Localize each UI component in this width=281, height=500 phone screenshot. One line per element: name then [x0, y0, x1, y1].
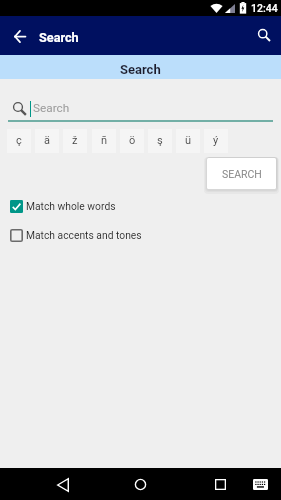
button[interactable]: ö	[120, 129, 144, 153]
button[interactable]: Match whole words	[10, 198, 281, 214]
button[interactable]: Switch keyboard	[250, 474, 271, 495]
button[interactable]: ñ	[92, 129, 116, 153]
staticText: ž	[72, 134, 78, 147]
button[interactable]: Search	[251, 22, 277, 48]
staticText: SEARCH	[222, 168, 262, 180]
button[interactable]: Home	[130, 474, 151, 495]
staticText: Match whole words	[26, 200, 116, 212]
staticText: Search	[39, 30, 79, 45]
button[interactable]: ç	[7, 129, 31, 153]
button[interactable]: Back	[7, 23, 33, 49]
staticText: 12:44	[251, 2, 278, 14]
staticText: ü	[185, 134, 192, 147]
button[interactable]: Recent apps	[210, 474, 231, 495]
staticText: ç	[16, 134, 22, 147]
button[interactable]: ý	[204, 129, 228, 153]
staticText: ş	[157, 134, 163, 147]
button[interactable]: ü	[176, 129, 200, 153]
staticText: ö	[129, 134, 136, 147]
button[interactable]: Match accents and tones	[10, 227, 281, 243]
button[interactable]: ž	[63, 129, 87, 153]
button[interactable]: SEARCH	[207, 158, 276, 189]
staticText: Search	[120, 62, 161, 77]
button[interactable]: Back	[52, 474, 73, 495]
staticText: ä	[44, 134, 50, 147]
button[interactable]: ä	[35, 129, 59, 153]
staticText: Search	[33, 101, 70, 115]
staticText: ñ	[101, 134, 108, 147]
staticText: ý	[213, 134, 219, 147]
button[interactable]: ş	[148, 129, 172, 153]
staticText: Match accents and tones	[26, 229, 142, 241]
